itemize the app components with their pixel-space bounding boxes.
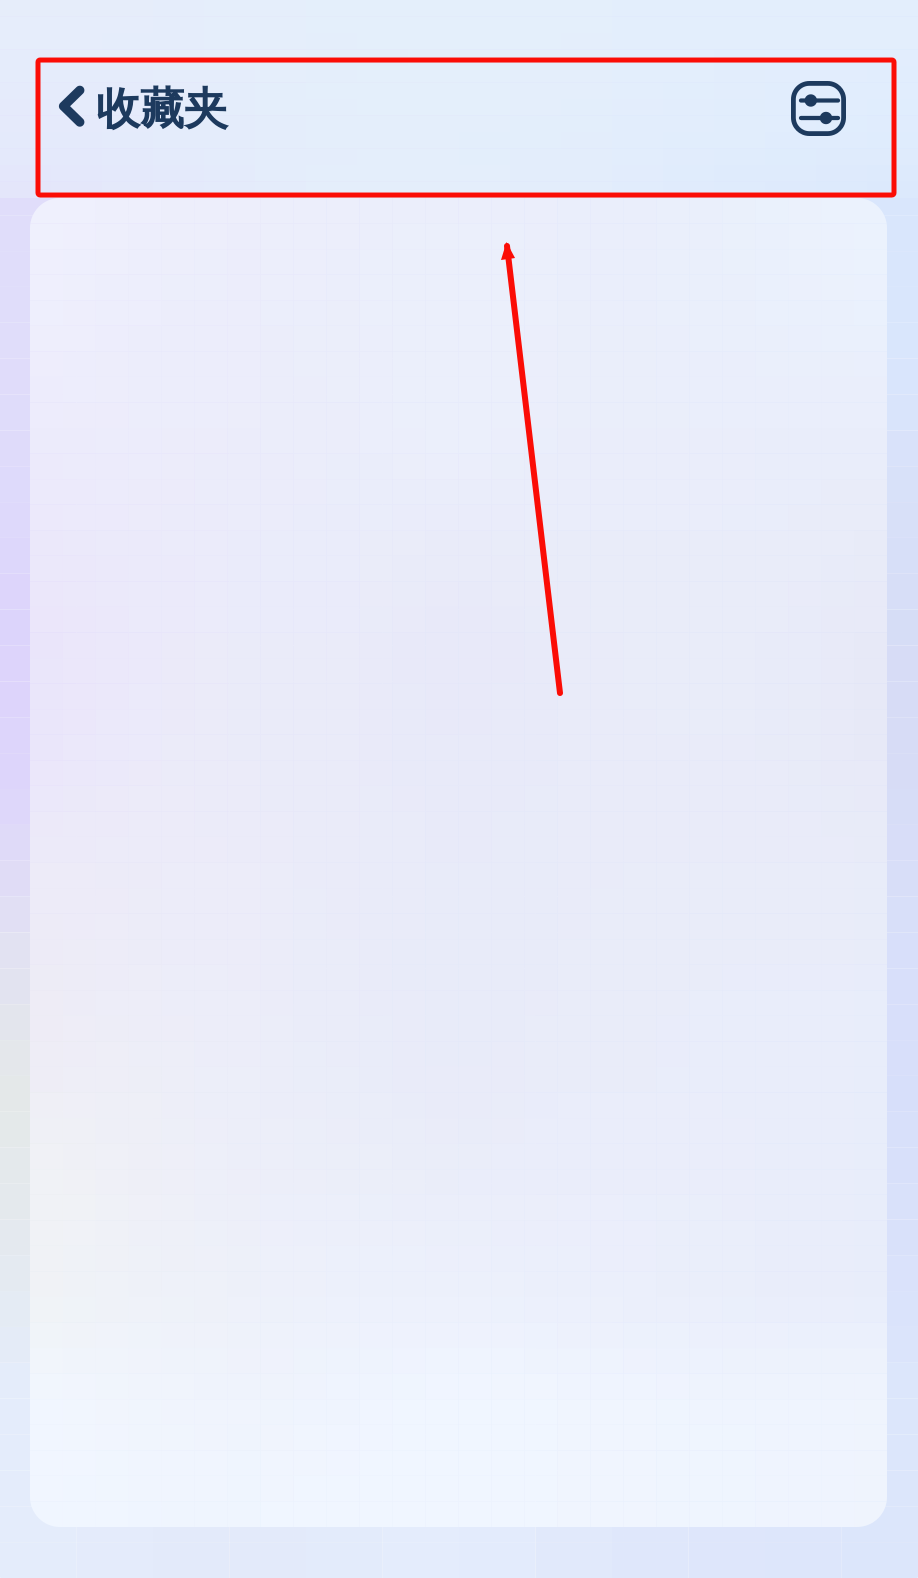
staticText: 收藏夹 — [96, 82, 228, 136]
button[interactable]: 收藏夹 — [0, 56, 252, 156]
button[interactable]: Filters — [779, 69, 858, 148]
